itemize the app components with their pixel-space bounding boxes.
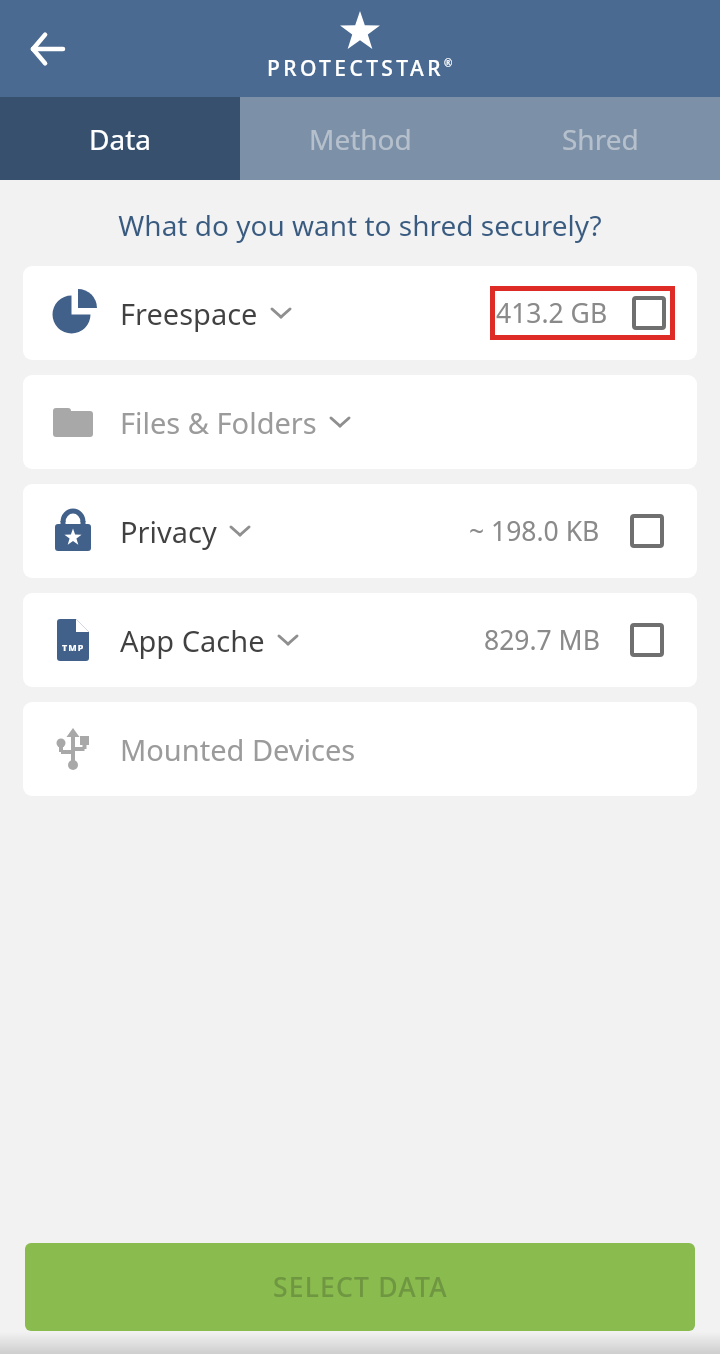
button[interactable]: TMP — [23, 593, 697, 687]
staticText: What do you want to shred securely? — [0, 206, 720, 244]
staticText: PROTECTSTAR — [267, 54, 444, 83]
button[interactable]: Method — [240, 97, 480, 180]
staticText: ® — [444, 56, 453, 70]
staticText: Files & Folders — [120, 403, 317, 442]
staticText: App Cache — [120, 621, 265, 660]
staticText: TMP — [62, 641, 85, 653]
button[interactable]: SELECT DATA — [25, 1243, 695, 1331]
staticText: Method — [309, 120, 412, 158]
staticText: Mounted Devices — [120, 730, 356, 769]
button[interactable]: Freespace — [23, 266, 697, 360]
button[interactable]: Data — [0, 97, 240, 180]
staticText: Data — [89, 120, 151, 158]
button[interactable]: Shred — [480, 97, 720, 180]
button[interactable] — [26, 27, 70, 71]
staticText: SELECT DATA — [273, 1269, 448, 1305]
button[interactable]: Files & Folders — [23, 375, 697, 469]
staticText: ~ 198.0 KB — [469, 513, 600, 549]
button[interactable]: Mounted Devices — [23, 702, 697, 796]
button[interactable]: Privacy — [23, 484, 697, 578]
staticText: 829.7 MB — [484, 622, 600, 658]
staticText: Freespace — [120, 294, 258, 333]
staticText: Shred — [562, 120, 639, 158]
staticText: Privacy — [120, 512, 217, 551]
staticText: 413.2 GB — [496, 295, 608, 331]
